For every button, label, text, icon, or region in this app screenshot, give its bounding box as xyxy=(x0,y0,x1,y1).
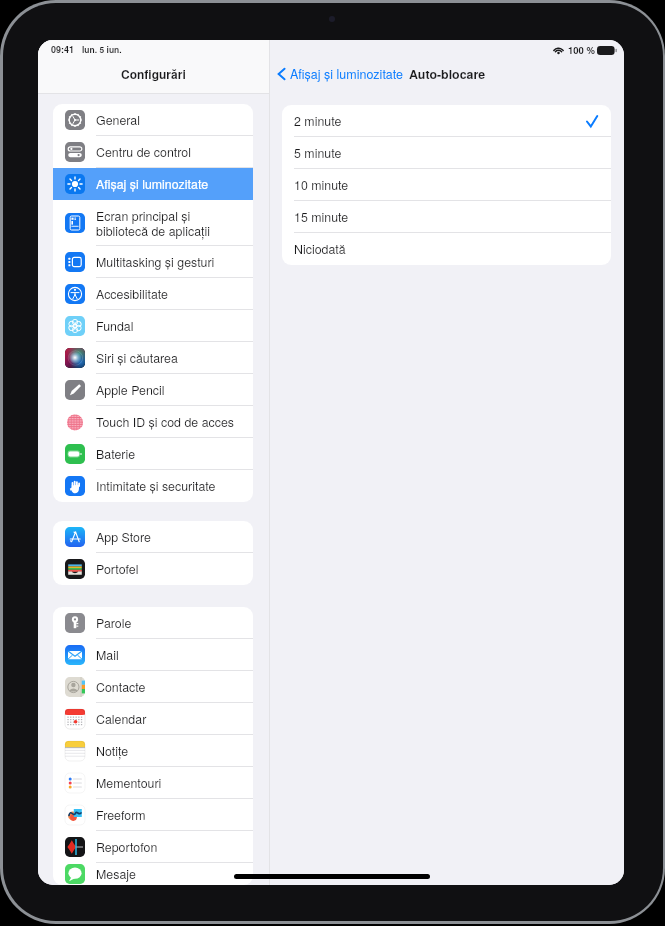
staticText: Notițe xyxy=(96,742,129,760)
button[interactable]: 15 minute xyxy=(282,201,611,233)
staticText: 15 minute xyxy=(294,208,349,226)
staticText: 2 minute xyxy=(294,112,342,130)
button[interactable]: Mesaje xyxy=(53,863,253,885)
staticText: Baterie xyxy=(96,445,136,463)
button[interactable]: General xyxy=(53,104,253,136)
staticText: Calendar xyxy=(96,710,147,728)
button[interactable]: Centru de control xyxy=(53,136,253,168)
staticText: Afișaj și luminozitate xyxy=(96,175,209,193)
button[interactable]: Calendar xyxy=(53,703,253,735)
button[interactable]: Mail xyxy=(53,639,253,671)
button[interactable]: Contacte xyxy=(53,671,253,703)
button[interactable]: Niciodată xyxy=(282,233,611,265)
staticText: Touch ID și cod de acces xyxy=(96,413,234,431)
staticText: Parole xyxy=(96,614,132,632)
staticText: Apple Pencil xyxy=(96,381,165,399)
button[interactable]: App Store xyxy=(53,521,253,553)
staticText: Portofel xyxy=(96,560,139,578)
staticText: 5 minute xyxy=(294,144,342,162)
staticText: Mementouri xyxy=(96,774,162,792)
staticText: Mesaje xyxy=(96,865,136,883)
staticText: General xyxy=(96,111,141,129)
button[interactable]: Freeform xyxy=(53,799,253,831)
button[interactable]: Notițe xyxy=(53,735,253,767)
staticText: lun. 5 iun. xyxy=(82,43,122,55)
staticText: Multitasking și gesturi xyxy=(96,253,215,271)
button[interactable]: Multitasking și gesturi xyxy=(53,246,253,278)
button[interactable]: Baterie xyxy=(53,438,253,470)
staticText: Siri și căutarea xyxy=(96,349,178,367)
staticText: App Store xyxy=(96,528,151,546)
button[interactable]: Siri și căutarea xyxy=(53,342,253,374)
staticText: Afișaj și luminozitate xyxy=(290,65,404,83)
button[interactable]: Accesibilitate xyxy=(53,278,253,310)
staticText: 10 minute xyxy=(294,176,349,194)
staticText: Configurări xyxy=(121,65,186,82)
other: Wi-Fi xyxy=(553,46,564,54)
staticText: 100 % xyxy=(568,43,595,57)
staticText: Niciodată xyxy=(294,240,346,258)
other: Battery 100 percent xyxy=(597,46,617,55)
button[interactable]: Back to Afișaj și luminozitate xyxy=(275,59,406,89)
button[interactable]: 10 minute xyxy=(282,169,611,201)
staticText: Auto-blocare xyxy=(409,65,486,83)
staticText: Contacte xyxy=(96,678,146,696)
button[interactable]: Mementouri xyxy=(53,767,253,799)
button[interactable]: Parole xyxy=(53,607,253,639)
staticText: Freeform xyxy=(96,806,146,824)
staticText: Centru de control xyxy=(96,143,191,161)
staticText: Ecran principal și bibliotecă de aplicaț… xyxy=(96,207,211,240)
other: Selected xyxy=(586,115,598,128)
button[interactable]: Portofel xyxy=(53,553,253,585)
button[interactable]: Intimitate și securitate xyxy=(53,470,253,502)
button[interactable]: Fundal xyxy=(53,310,253,342)
staticText: Mail xyxy=(96,646,119,664)
staticText: Fundal xyxy=(96,317,134,335)
staticText: Intimitate și securitate xyxy=(96,477,216,495)
button[interactable]: Touch ID și cod de acces xyxy=(53,406,253,438)
staticText: 09:41 xyxy=(51,43,75,56)
button[interactable]: Reportofon xyxy=(53,831,253,863)
button[interactable]: Apple Pencil xyxy=(53,374,253,406)
staticText: Reportofon xyxy=(96,838,158,856)
staticText: Accesibilitate xyxy=(96,285,168,303)
button[interactable]: Ecran principal și bibliotecă de aplicaț… xyxy=(53,200,253,246)
button[interactable]: Afișaj și luminozitate xyxy=(53,168,253,200)
button[interactable]: 2 minute xyxy=(282,105,611,137)
button[interactable]: 5 minute xyxy=(282,137,611,169)
